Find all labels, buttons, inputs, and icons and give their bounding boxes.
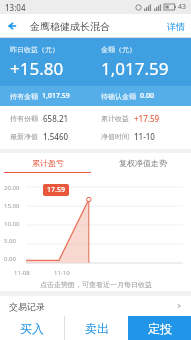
staticText: 买入 [20, 321, 44, 336]
staticText: 20.00 [4, 184, 20, 192]
staticText: 金鹰稳健成长混合 [30, 20, 110, 33]
button[interactable]: 定投 [128, 316, 191, 340]
staticText: 15.00 [4, 202, 20, 210]
staticText: 0.00 [4, 255, 16, 263]
button[interactable]: 买入 [0, 316, 64, 340]
staticText: 持有金额 [10, 92, 38, 101]
staticText: +17.59 [134, 113, 160, 124]
button[interactable]: Back [0, 14, 24, 38]
staticText: 金额（元） [101, 45, 136, 54]
staticText: 13:04 [5, 2, 26, 13]
button[interactable]: 累计盈亏 [0, 153, 95, 173]
staticText: 复权净值走势 [119, 158, 167, 168]
staticText: 详情 [167, 21, 185, 32]
staticText: 0.00 [140, 91, 154, 101]
staticText: 待确认金额 [101, 92, 136, 101]
staticText: 1,017.59 [42, 91, 70, 101]
staticText: 累计盈亏 [32, 158, 64, 168]
staticText: 定投 [148, 321, 172, 336]
button[interactable]: 复权净值走势 [95, 153, 191, 173]
staticText: 卖出 [85, 321, 109, 336]
staticText: 1,017.59 [101, 57, 169, 80]
button[interactable]: 交易记录 [0, 296, 191, 316]
staticText: 17.59 [47, 185, 65, 195]
staticText: 点击走势图，可查看近一月每日收益 [40, 280, 152, 289]
staticText: 11-08 [14, 269, 30, 277]
staticText: 昨日收益（元） [10, 45, 59, 54]
staticText: 累计收益 [101, 114, 129, 123]
staticText: 持有份额 [10, 114, 38, 123]
staticText: 1.5460 [43, 131, 69, 142]
staticText: 5.00 [4, 237, 16, 245]
staticText: 43 [178, 2, 187, 12]
staticText: 658.21 [43, 113, 69, 124]
staticText: 11-10 [134, 131, 155, 142]
staticText: 净值时间 [101, 132, 129, 141]
staticText: 交易记录 [9, 301, 45, 312]
button[interactable]: 卖出 [65, 316, 128, 340]
staticText: 11-10 [54, 269, 70, 277]
button[interactable]: 详情 [161, 17, 191, 36]
staticText: 10.00 [4, 220, 20, 228]
staticText: +15.80 [10, 57, 64, 80]
staticText: 最新净值 [10, 132, 38, 141]
